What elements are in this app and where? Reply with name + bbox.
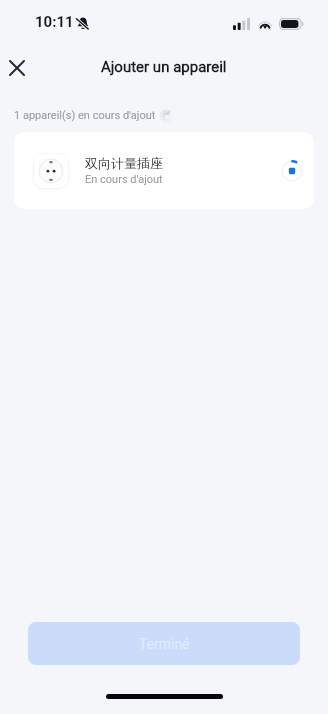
button[interactable]: Stop adding device bbox=[281, 160, 303, 182]
staticText: Terminé bbox=[139, 636, 190, 652]
staticText: Ajouter un appareil bbox=[101, 58, 227, 76]
button[interactable]: Close bbox=[0, 51, 33, 84]
staticText: 双向计量插座 bbox=[85, 155, 163, 171]
button[interactable]: 双向计量插座 bbox=[14, 132, 314, 209]
staticText: En cours d'ajout bbox=[85, 173, 163, 186]
staticText: 10:11 bbox=[35, 13, 74, 31]
staticText: 1 appareil(s) en cours d'ajout bbox=[14, 109, 156, 122]
button[interactable]: Terminé bbox=[28, 622, 300, 665]
